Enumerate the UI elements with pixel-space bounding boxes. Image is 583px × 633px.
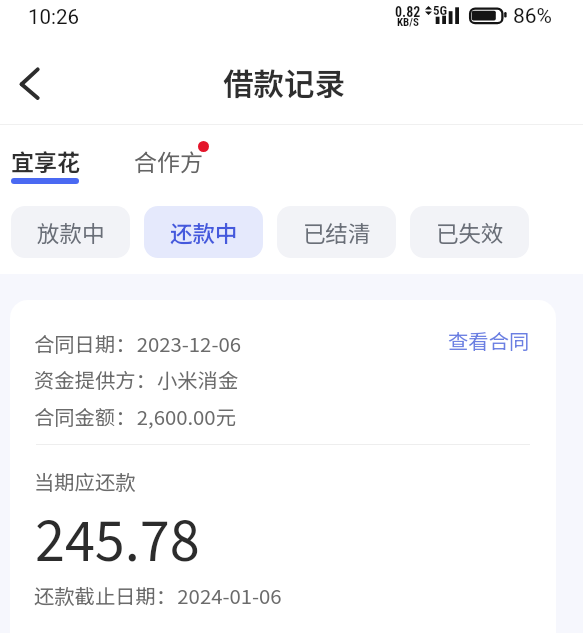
button[interactable]: 合同日期： 2023-12-06 bbox=[10, 300, 556, 633]
button[interactable]: 合作方 bbox=[130, 144, 199, 177]
staticText: 宜享花 bbox=[11, 144, 80, 177]
staticText: 已结清 bbox=[303, 216, 371, 249]
staticText: 86% bbox=[513, 4, 552, 29]
staticText: 查看合同 bbox=[448, 325, 530, 354]
staticText: KB/S bbox=[397, 16, 419, 29]
staticText: 合同日期： 2023-12-06 bbox=[34, 328, 241, 357]
staticText: 合作方 bbox=[134, 144, 203, 177]
staticText: 合同金额： 2,600.00元 bbox=[34, 401, 236, 430]
staticText: 放款中 bbox=[37, 216, 105, 249]
staticText: 还款截止日期： 2024-01-06 bbox=[34, 580, 282, 609]
staticText: 已失效 bbox=[436, 216, 504, 249]
staticText: 借款记录 bbox=[223, 60, 345, 104]
button[interactable]: 已失效 bbox=[410, 206, 529, 258]
button[interactable]: Back bbox=[0, 53, 48, 101]
button[interactable]: 查看合同 bbox=[442, 319, 536, 360]
staticText: 5G bbox=[433, 3, 448, 18]
button[interactable]: 放款中 bbox=[11, 206, 130, 258]
staticText: 当期应还款 bbox=[34, 466, 136, 495]
button[interactable]: 已结清 bbox=[277, 206, 396, 258]
staticText: 资金提供方： 小米消金 bbox=[34, 364, 239, 393]
staticText: 10:26 bbox=[28, 5, 80, 29]
staticText: 还款中 bbox=[170, 216, 238, 249]
button[interactable]: 还款中 bbox=[144, 206, 263, 258]
button[interactable]: 宜享花 bbox=[9, 144, 81, 177]
staticText: 0.82 bbox=[395, 4, 421, 20]
staticText: 245.78 bbox=[35, 507, 200, 571]
